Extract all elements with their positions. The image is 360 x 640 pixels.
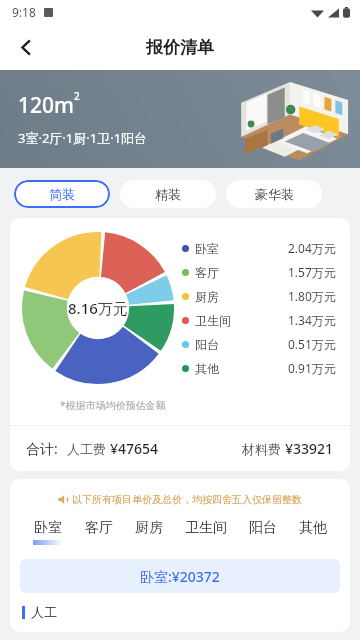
button[interactable]: 阳台 [246, 517, 280, 547]
staticText: 报价清单 [146, 37, 214, 58]
staticText: 3室·2厅·1厨·1卫·1阳台 [18, 129, 148, 147]
staticText: 人工 [31, 604, 57, 620]
staticText: 客厅 [85, 519, 113, 537]
staticText: *根据市场均价预估金额 [60, 398, 166, 412]
staticText: 1.80万元 [288, 288, 336, 304]
staticText: 阳台 [195, 337, 219, 352]
staticText: 精装 [155, 186, 181, 202]
staticText: 8.16万元 [68, 298, 128, 318]
staticText: 厨房 [135, 519, 163, 537]
staticText: 0.51万元 [288, 336, 336, 352]
staticText: 其他 [195, 361, 219, 376]
button[interactable]: Back [6, 27, 46, 67]
staticText: 合计: [26, 439, 58, 458]
staticText: 卫生间 [195, 313, 231, 328]
staticText: ¥33921 [285, 439, 334, 458]
staticText: 1.34万元 [288, 312, 336, 328]
staticText: 2 [74, 89, 80, 103]
staticText: 材料费 [242, 441, 281, 457]
staticText: 卧室:¥20372 [140, 567, 220, 586]
staticText: 9:18 [12, 4, 36, 20]
staticText: 以下所有项目单价及总价，均按四舍五入仅保留整数 [72, 493, 302, 506]
staticText: 1.57万元 [288, 264, 336, 280]
staticText: 简装 [49, 186, 75, 202]
staticText: 其他 [299, 519, 327, 537]
button[interactable]: 卧室:¥20372 [20, 559, 340, 593]
staticText: 阳台 [249, 519, 277, 537]
staticText: 0.91万元 [288, 360, 336, 376]
staticText: 客厅 [195, 265, 219, 280]
button[interactable]: 豪华装 [226, 180, 322, 208]
staticText: 豪华装 [255, 186, 294, 202]
button[interactable]: 卧室 [30, 517, 66, 547]
staticText: 厨房 [195, 289, 219, 304]
button[interactable]: 客厅 [82, 517, 116, 547]
button[interactable]: 厨房 [132, 517, 166, 547]
staticText: 卧室 [34, 519, 62, 537]
button[interactable]: 卫生间 [182, 517, 230, 547]
staticText: 卫生间 [185, 519, 227, 537]
staticText: 卧室 [195, 241, 219, 256]
staticText: ¥47654 [110, 439, 159, 458]
staticText: 120m [18, 91, 74, 120]
button[interactable]: 简装 [14, 180, 110, 208]
button[interactable]: 精装 [120, 180, 216, 208]
staticText: 2.04万元 [288, 240, 336, 256]
button[interactable]: 其他 [296, 517, 330, 547]
staticText: 人工费 [67, 441, 106, 457]
